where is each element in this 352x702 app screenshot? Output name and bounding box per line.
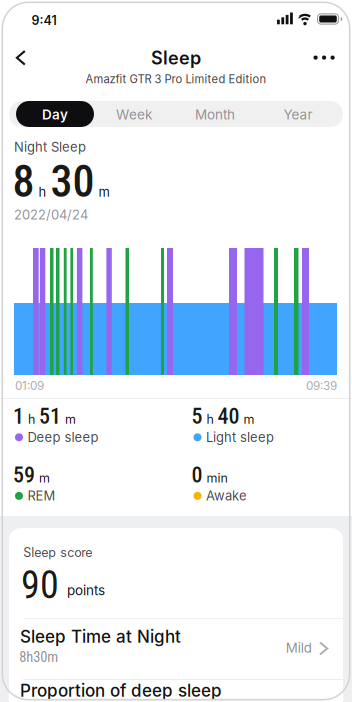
staticText: 8 h 30 m	[12, 156, 109, 207]
staticText: Sleep score	[23, 545, 92, 560]
staticText: 90 points	[21, 563, 105, 607]
staticText: 09:39	[306, 379, 337, 393]
staticText: Sleep	[151, 47, 201, 69]
staticText: Month	[195, 106, 235, 123]
staticText: 01:09	[15, 379, 44, 393]
staticText: Awake	[206, 488, 247, 504]
staticText: Sleep Time at Night	[20, 626, 181, 647]
staticText: Year	[283, 106, 312, 123]
staticText: 5 h 40 m	[191, 404, 254, 429]
staticText: 2022/04/24	[14, 207, 88, 223]
staticText: Light sleep	[206, 429, 274, 445]
staticText: 1 h 51 m	[13, 404, 76, 429]
staticText: Week	[116, 106, 152, 123]
staticText: 59 m	[13, 462, 50, 487]
staticText: Day	[42, 106, 68, 123]
staticText: 0 min	[191, 462, 227, 487]
staticText: Mild	[286, 640, 312, 656]
staticText: Deep sleep	[27, 429, 98, 445]
staticText: Amazfit GTR 3 Pro Limited Edition	[85, 72, 266, 86]
staticText: 8h30m	[19, 648, 58, 665]
staticText: Night Sleep	[14, 139, 86, 155]
staticText: REM	[27, 488, 55, 504]
staticText: 9:41	[31, 13, 56, 28]
staticText: Proportion of deep sleep	[20, 680, 222, 701]
